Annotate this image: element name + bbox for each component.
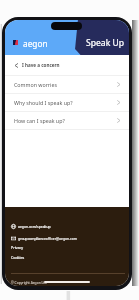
button[interactable]: groupcomplianceofficer@aegon.com: [11, 236, 77, 241]
button[interactable]: Privacy: [11, 245, 23, 250]
staticText: I have a concern: [22, 62, 60, 68]
staticText: aegon: [23, 38, 48, 49]
button[interactable]: Cookies: [11, 255, 25, 260]
staticText: Speak Up: [86, 37, 125, 49]
button[interactable]: Why should I speak up?: [5, 94, 129, 111]
button[interactable]: Common worries: [5, 76, 129, 93]
other: Back: [14, 63, 19, 68]
button[interactable]: Back: [5, 55, 129, 75]
button[interactable]: How can I speak up?: [5, 112, 129, 129]
button[interactable]: aegon.com/speakup: [11, 224, 51, 229]
staticText: Why should I speak up?: [14, 99, 73, 106]
staticText: How can I speak up?: [14, 117, 65, 124]
staticText: © Copyright Aegon Ltd: [11, 280, 47, 284]
staticText: groupcomplianceofficer@aegon.com: [18, 236, 77, 241]
staticText: aegon.com/speakup: [18, 224, 51, 229]
staticText: Common worries: [14, 81, 57, 88]
